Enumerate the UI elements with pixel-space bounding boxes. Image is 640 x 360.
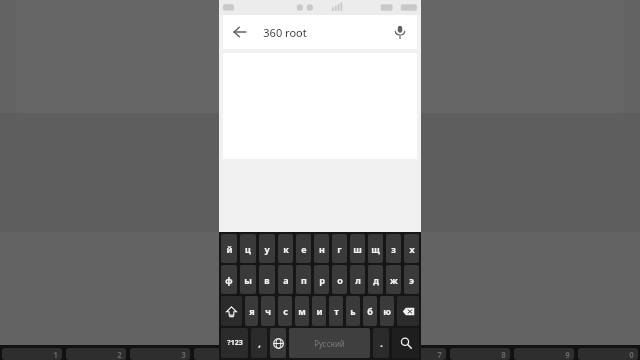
- button[interactable]: о: [332, 265, 347, 294]
- staticText: 3: [181, 349, 186, 360]
- button[interactable]: 360 root: [257, 15, 383, 49]
- staticText: .: [380, 337, 383, 349]
- staticText: ч: [265, 305, 271, 317]
- button[interactable]: Voice search: [383, 15, 417, 49]
- button[interactable]: р: [314, 265, 329, 294]
- staticText: о: [337, 274, 343, 286]
- staticText: г: [337, 243, 342, 255]
- staticText: ,: [258, 337, 261, 349]
- button[interactable]: ь: [346, 296, 360, 326]
- button[interactable]: в: [259, 265, 275, 294]
- staticText: б: [367, 305, 373, 317]
- staticText: н: [319, 243, 325, 255]
- staticText: ?123: [227, 338, 243, 348]
- staticText: л: [355, 274, 361, 286]
- button[interactable]: с: [278, 296, 292, 326]
- staticText: 5: [309, 349, 314, 360]
- staticText: м: [298, 305, 306, 317]
- staticText: х: [409, 243, 415, 255]
- button[interactable]: ж: [386, 265, 401, 294]
- staticText: Русский: [314, 338, 345, 349]
- staticText: ы: [244, 274, 252, 286]
- button[interactable]: Change language: [270, 328, 286, 358]
- button[interactable]: г: [332, 234, 347, 263]
- button[interactable]: ы: [240, 265, 256, 294]
- button[interactable]: Search: [392, 328, 419, 358]
- button[interactable]: ц: [240, 234, 256, 263]
- staticText: ш: [353, 243, 362, 255]
- button[interactable]: Русский: [289, 328, 370, 358]
- button[interactable]: ,: [251, 328, 267, 358]
- button[interactable]: ш: [350, 234, 365, 263]
- button[interactable]: э: [404, 265, 419, 294]
- staticText: з: [391, 243, 396, 255]
- staticText: 4: [245, 349, 250, 360]
- button[interactable]: .: [373, 328, 389, 358]
- button[interactable]: а: [278, 265, 293, 294]
- button[interactable]: я: [245, 296, 258, 326]
- button[interactable]: к: [278, 234, 293, 263]
- button[interactable]: и: [312, 296, 326, 326]
- staticText: и: [316, 305, 323, 317]
- staticText: ь: [350, 305, 356, 317]
- staticText: 1: [53, 349, 58, 360]
- staticText: 7: [437, 349, 442, 360]
- button[interactable]: ф: [221, 265, 237, 294]
- button[interactable]: ч: [261, 296, 275, 326]
- staticText: ц: [245, 243, 251, 255]
- staticText: п: [301, 274, 307, 286]
- button[interactable]: т: [329, 296, 343, 326]
- staticText: ф: [225, 274, 233, 286]
- staticText: щ: [371, 243, 380, 255]
- button[interactable]: Back: [223, 15, 257, 49]
- staticText: э: [409, 274, 414, 286]
- staticText: с: [283, 305, 288, 317]
- staticText: д: [373, 274, 379, 286]
- button[interactable]: н: [314, 234, 329, 263]
- button[interactable]: ?123: [221, 328, 248, 358]
- staticText: к: [283, 243, 289, 255]
- button[interactable]: й: [221, 234, 237, 263]
- staticText: 2: [117, 349, 122, 360]
- staticText: т: [334, 305, 339, 317]
- staticText: ж: [390, 274, 398, 286]
- button[interactable]: л: [350, 265, 365, 294]
- staticText: а: [283, 274, 289, 286]
- button[interactable]: е: [296, 234, 311, 263]
- staticText: 9: [565, 349, 570, 360]
- button[interactable]: з: [386, 234, 401, 263]
- button[interactable]: п: [296, 265, 311, 294]
- staticText: р: [319, 274, 325, 286]
- staticText: у: [264, 243, 270, 255]
- button[interactable]: у: [259, 234, 275, 263]
- staticText: е: [301, 243, 307, 255]
- staticText: я: [249, 305, 255, 317]
- button[interactable]: м: [295, 296, 309, 326]
- staticText: 8: [501, 349, 506, 360]
- staticText: й: [226, 243, 233, 255]
- staticText: ю: [383, 305, 391, 317]
- button[interactable]: Key: [221, 296, 242, 326]
- staticText: 0: [629, 349, 634, 360]
- staticText: 6: [373, 349, 378, 360]
- staticText: в: [264, 274, 270, 286]
- button[interactable]: щ: [368, 234, 383, 263]
- button[interactable]: д: [368, 265, 383, 294]
- button[interactable]: ю: [380, 296, 394, 326]
- staticText: 360 root: [263, 25, 307, 40]
- button[interactable]: х: [404, 234, 419, 263]
- button[interactable]: б: [363, 296, 377, 326]
- button[interactable]: Key: [397, 296, 419, 326]
